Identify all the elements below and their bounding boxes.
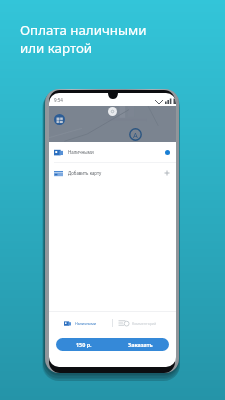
button[interactable]: Наличными [49, 142, 176, 162]
staticText: Добавить карту [68, 170, 102, 176]
staticText: Комментарий [132, 321, 157, 326]
staticText: Оплата наличными [20, 21, 147, 39]
button[interactable]: Комментарий [113, 312, 176, 334]
staticText: или картой [20, 39, 93, 57]
staticText: Заказать [128, 341, 153, 348]
staticText: Наличными [75, 321, 97, 326]
staticText: Наличными [68, 149, 94, 155]
staticText: A [133, 130, 138, 140]
button[interactable]: Наличными [49, 312, 112, 334]
staticText: 9:54 [54, 97, 63, 103]
staticText: 150 р. [76, 341, 92, 348]
button[interactable]: Locate me [108, 107, 117, 116]
button[interactable]: 150 р. [56, 338, 169, 351]
button[interactable]: Добавить карту [49, 163, 176, 183]
